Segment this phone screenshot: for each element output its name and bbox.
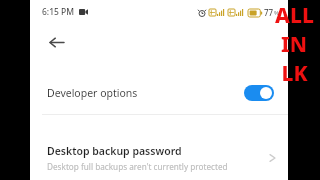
- staticText: Developer options: [47, 86, 138, 100]
- staticText: %: [274, 9, 279, 17]
- staticText: 6:15 PM: [42, 6, 75, 18]
- staticText: Desktop backup password: [47, 144, 182, 158]
- button[interactable]: Developer options: [30, 72, 288, 114]
- staticText: LK: [281, 59, 308, 88]
- button[interactable]: Back: [38, 27, 74, 57]
- staticText: ALL: [275, 1, 314, 30]
- button[interactable]: Desktop backup password: [30, 138, 288, 178]
- staticText: IN: [281, 30, 307, 59]
- button[interactable]: Developer options toggle: [244, 85, 274, 101]
- staticText: 77: [264, 7, 274, 18]
- staticText: Desktop full backups aren't currently pr…: [47, 161, 228, 172]
